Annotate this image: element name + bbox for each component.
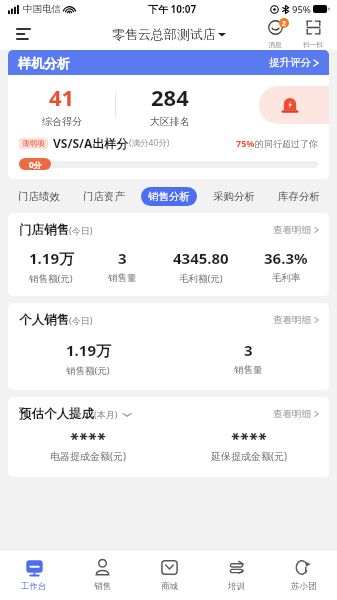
staticText: 综合得分: [42, 115, 82, 128]
staticText: 2: [282, 19, 286, 28]
staticText: 工作台: [21, 581, 47, 592]
staticText: 查看明细: [273, 314, 311, 326]
button[interactable]: 零售云总部测试店: [112, 26, 226, 42]
staticText: 4345.80: [173, 248, 229, 268]
button[interactable]: 个人销售: [8, 303, 329, 390]
button[interactable]: Menu: [10, 21, 36, 47]
button[interactable]: 门店销售: [8, 213, 329, 296]
staticText: 下午 10:07: [148, 2, 197, 16]
staticText: 销售额(元): [66, 364, 110, 377]
staticText: 查看明细: [273, 224, 311, 236]
button[interactable]: 门店绩效: [6, 183, 71, 209]
staticText: 的同行超过了你: [255, 138, 318, 149]
button[interactable]: 预估个人提成: [8, 397, 329, 477]
staticText: 消息: [259, 41, 291, 49]
button[interactable]: 采购分析: [201, 183, 266, 209]
staticText: (今日): [69, 224, 93, 236]
staticText: 商城: [161, 581, 178, 592]
staticText: 大区排名: [150, 115, 190, 128]
staticText: 预估个人提成: [19, 406, 94, 422]
staticText: 1.19万: [66, 340, 111, 360]
staticText: 门店资产: [83, 190, 125, 203]
staticText: 销售量: [234, 364, 263, 376]
staticText: (今日): [69, 314, 93, 326]
staticText: 电器提成金额(元): [50, 449, 126, 463]
button[interactable]: 查看明细: [273, 408, 319, 420]
button[interactable]: 消息: [259, 19, 291, 49]
staticText: 门店绩效: [18, 190, 60, 203]
button[interactable]: 查看明细: [273, 224, 319, 236]
staticText: 个人销售: [19, 312, 69, 328]
staticText: 1.19万: [29, 248, 74, 268]
button[interactable]: 预警: [259, 86, 329, 124]
staticText: 75%: [236, 137, 255, 149]
staticText: 苏小团: [291, 581, 317, 592]
staticText: 3: [244, 340, 253, 360]
button[interactable]: 销售: [68, 550, 136, 600]
button[interactable]: 工作台: [0, 550, 68, 600]
staticText: 薄弱项: [22, 139, 45, 148]
staticText: 毛利率: [272, 272, 301, 284]
staticText: 零售云总部测试店: [112, 26, 216, 42]
staticText: 样机分析: [18, 55, 70, 71]
staticText: (满分40分): [129, 137, 170, 149]
staticText: VS/S/A出样分: [53, 135, 129, 151]
button[interactable]: 扫一扫: [297, 19, 329, 49]
button[interactable]: 培训: [203, 550, 270, 600]
staticText: 培训: [228, 581, 245, 592]
staticText: 95%: [292, 3, 311, 16]
staticText: 销售: [94, 581, 111, 592]
staticText: 中国电信: [23, 3, 61, 15]
staticText: 提升评分: [269, 56, 311, 69]
staticText: 284: [151, 82, 189, 112]
staticText: 查看明细: [273, 408, 311, 420]
staticText: 库存分析: [278, 190, 320, 203]
staticText: 销售额(元): [29, 272, 73, 285]
staticText: 延保提成金额(元): [211, 449, 287, 463]
staticText: (本月): [94, 408, 118, 420]
staticText: 门店销售: [19, 222, 69, 238]
button[interactable]: 门店资产: [71, 183, 136, 209]
staticText: 扫一扫: [297, 41, 329, 49]
button[interactable]: 销售分析: [136, 183, 201, 209]
button[interactable]: 苏小团: [270, 550, 337, 600]
staticText: 销售量: [108, 272, 137, 284]
staticText: 0分: [29, 159, 42, 170]
button[interactable]: 库存分析: [266, 183, 331, 209]
staticText: 销售分析: [148, 190, 190, 203]
staticText: 41: [49, 82, 75, 112]
button[interactable]: 样机分析: [8, 50, 329, 75]
button[interactable]: 查看明细: [273, 314, 319, 326]
staticText: 3: [118, 248, 127, 268]
staticText: 毛利额(元): [179, 272, 223, 285]
button[interactable]: 商城: [136, 550, 203, 600]
staticText: 采购分析: [213, 190, 255, 203]
staticText: 36.3%: [264, 248, 308, 268]
